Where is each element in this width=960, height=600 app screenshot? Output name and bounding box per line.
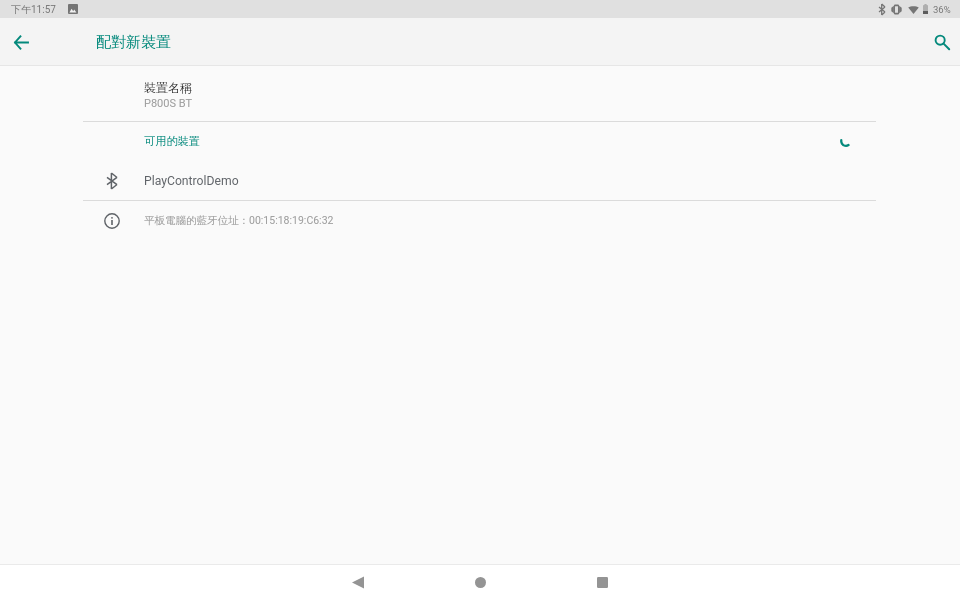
staticText: 平板電腦的藍牙位址：00:15:18:19:C6:32 (144, 214, 334, 227)
staticText: 下午11:57 (11, 3, 56, 16)
button[interactable]: Recents (584, 564, 620, 600)
staticText: 配對新裝置 (96, 33, 171, 52)
button[interactable]: Back (340, 564, 376, 600)
button[interactable]: PlayControlDemo (83, 161, 876, 200)
button[interactable]: 裝置名稱 (83, 66, 876, 121)
button[interactable]: Home (462, 564, 498, 600)
staticText: 裝置名稱 (144, 80, 192, 95)
button[interactable]: Search (921, 18, 960, 66)
staticText: P800S BT (144, 97, 193, 110)
button[interactable]: Back (0, 18, 42, 66)
staticText: 36% (933, 4, 951, 15)
staticText: 可用的裝置 (144, 134, 200, 148)
staticText: PlayControlDemo (144, 174, 239, 188)
